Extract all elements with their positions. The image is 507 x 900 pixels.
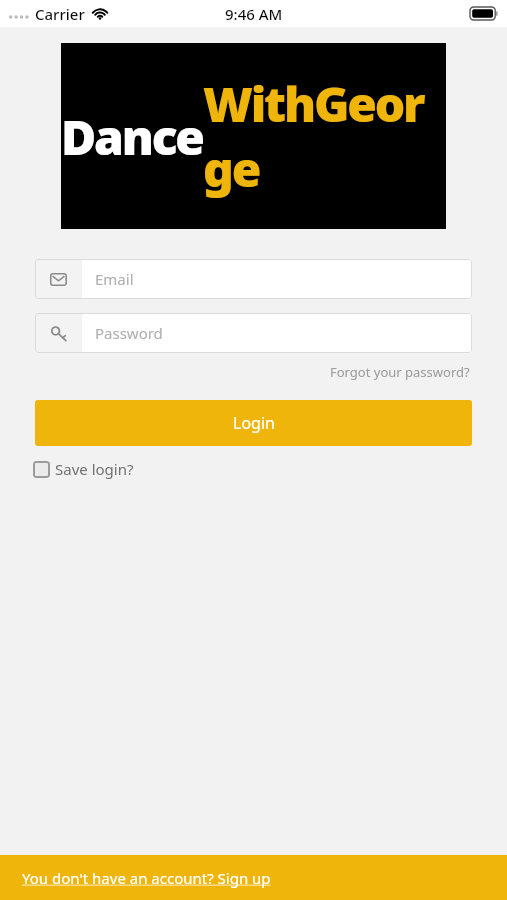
- staticText: 9:46 AM: [225, 4, 283, 24]
- button[interactable]: Save login?: [33, 456, 142, 482]
- staticText: Forgot your password?: [330, 363, 470, 381]
- staticText: You don't have an account? Sign up: [22, 868, 271, 888]
- staticText: Carrier: [35, 4, 85, 24]
- button[interactable]: Forgot your password?: [328, 360, 472, 384]
- button[interactable]: You don't have an account? Sign up: [0, 855, 507, 900]
- staticText: Password: [95, 323, 163, 343]
- button[interactable]: Password: [35, 313, 472, 353]
- staticText: Email: [95, 269, 134, 289]
- staticText: Save login?: [55, 459, 134, 479]
- button[interactable]: Login: [35, 400, 472, 446]
- button[interactable]: Email: [35, 259, 472, 299]
- staticText: Login: [233, 412, 275, 434]
- staticText: WithGeorge: [203, 71, 446, 201]
- other: Password: [50, 325, 67, 342]
- other: Email: [50, 273, 67, 286]
- staticText: Dance: [61, 104, 203, 169]
